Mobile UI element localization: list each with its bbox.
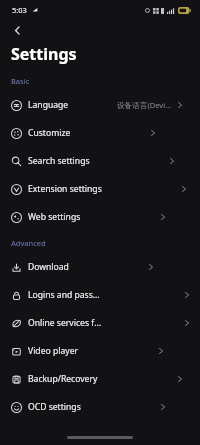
staticText: Web settings: [28, 211, 81, 223]
button[interactable]: Video player: [0, 337, 200, 365]
button[interactable]: Web settings: [0, 203, 200, 231]
button[interactable]: Online services for desktop browsers: [0, 309, 200, 337]
button[interactable]: Back: [0, 20, 34, 40]
staticText: Language: [28, 99, 69, 111]
staticText: Extension settings: [28, 183, 102, 195]
staticText: Online services for desktop browsers: [28, 317, 105, 329]
staticText: 5:03: [12, 5, 27, 15]
button[interactable]: OCD settings: [0, 393, 200, 421]
staticText: Customize: [28, 127, 71, 139]
button[interactable]: Download: [0, 253, 200, 281]
staticText: 设备语言(Devi…: [117, 100, 172, 110]
button[interactable]: Customize: [0, 119, 200, 147]
button[interactable]: Language: [0, 91, 200, 119]
staticText: Download: [28, 261, 69, 273]
button[interactable]: Backup/Recovery: [0, 365, 200, 393]
staticText: Backup/Recovery: [28, 373, 98, 385]
staticText: Search settings: [28, 155, 90, 167]
staticText: Settings: [11, 43, 77, 65]
staticText: Logins and passwords: [28, 289, 105, 301]
staticText: OCD settings: [28, 401, 81, 413]
staticText: Basic: [11, 76, 30, 86]
button[interactable]: Search settings: [0, 147, 200, 175]
staticText: Advanced: [11, 238, 46, 248]
staticText: Video player: [28, 345, 79, 357]
button[interactable]: Extension settings: [0, 175, 200, 203]
button[interactable]: Logins and passwords: [0, 281, 200, 309]
